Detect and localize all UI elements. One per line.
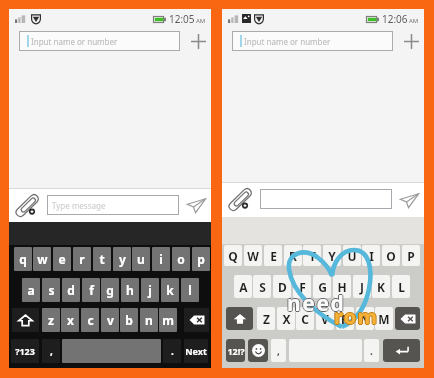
button[interactable]: c [81, 308, 99, 332]
button[interactable]: Backspace [395, 307, 420, 330]
button[interactable]: q [14, 247, 32, 271]
button[interactable]: Z [257, 307, 275, 330]
button[interactable]: B [336, 307, 354, 330]
button[interactable]: u [132, 247, 150, 271]
button[interactable]: Type message [47, 195, 179, 215]
button[interactable]: . [163, 339, 181, 363]
button[interactable]: W [244, 245, 262, 266]
staticText: w [37, 251, 48, 267]
button[interactable]: r [73, 247, 91, 271]
button[interactable]: 12!? [226, 339, 245, 362]
button[interactable]: s [42, 278, 60, 302]
button[interactable]: Emoji [248, 339, 268, 362]
staticText: AM [409, 17, 419, 25]
button[interactable]: V [316, 307, 334, 330]
button[interactable]: k [161, 278, 179, 302]
button[interactable]: l [181, 278, 199, 302]
button[interactable]: , [271, 339, 286, 362]
button[interactable]: Next [184, 339, 208, 363]
staticText: f [89, 282, 94, 298]
button[interactable]: p [192, 247, 210, 271]
button[interactable]: v [101, 308, 119, 332]
button[interactable]: i [152, 247, 170, 271]
button[interactable]: Input name or number [232, 31, 393, 51]
button[interactable]: E [264, 245, 282, 266]
button[interactable]: Shift [12, 308, 39, 332]
button[interactable]: j [141, 278, 159, 302]
staticText: r [79, 251, 85, 267]
button[interactable]: K [372, 275, 390, 298]
staticText: R [289, 248, 297, 264]
button[interactable]: F [293, 275, 311, 298]
button[interactable]: O [382, 245, 400, 266]
button[interactable]: Attach file [15, 189, 41, 222]
button[interactable]: N [356, 307, 374, 330]
button[interactable]: G [313, 275, 331, 298]
button[interactable]: g [101, 278, 119, 302]
staticText: 12:06 [382, 12, 408, 26]
button[interactable]: z [42, 308, 60, 332]
staticText: h [126, 282, 134, 298]
button[interactable] [260, 189, 392, 209]
staticText: L [398, 279, 405, 295]
button[interactable]: A [234, 275, 252, 298]
button[interactable]: . [364, 339, 379, 362]
button[interactable]: Y [323, 245, 341, 266]
button[interactable]: Attach file [228, 183, 254, 217]
button[interactable]: o [172, 247, 190, 271]
button[interactable]: m [159, 308, 177, 332]
staticText: E [270, 248, 277, 264]
staticText: N [360, 311, 370, 327]
button[interactable]: Add contact [398, 31, 424, 51]
staticText: l [188, 282, 192, 298]
button[interactable]: e [53, 247, 71, 271]
staticText: a [27, 282, 35, 298]
button[interactable]: b [120, 308, 138, 332]
button[interactable]: d [62, 278, 80, 302]
button[interactable]: C [296, 307, 314, 330]
button[interactable]: X [277, 307, 295, 330]
staticText: t [99, 251, 105, 267]
staticText: need [287, 288, 346, 317]
button[interactable]: M [375, 307, 393, 330]
button[interactable]: D [273, 275, 291, 298]
button[interactable]: Add contact [185, 31, 211, 51]
button[interactable]: h [121, 278, 139, 302]
button[interactable]: ?123 [11, 339, 39, 363]
button[interactable]: R [284, 245, 302, 266]
button[interactable]: Send [394, 183, 424, 217]
button[interactable]: a [22, 278, 40, 302]
button[interactable]: J [353, 275, 371, 298]
button[interactable]: Send [181, 189, 211, 222]
button[interactable]: Enter [383, 339, 420, 362]
staticText: rom [334, 302, 379, 329]
staticText: A [239, 279, 248, 295]
button[interactable]: Shift [226, 307, 253, 330]
staticText: m [162, 312, 174, 328]
button[interactable]: P [402, 245, 420, 266]
staticText: j [148, 282, 152, 298]
button[interactable]: L [392, 275, 410, 298]
button[interactable]: f [82, 278, 100, 302]
button[interactable]: U [343, 245, 361, 266]
button[interactable]: n [140, 308, 158, 332]
staticText: , [50, 344, 53, 358]
button[interactable]: Input name or number [19, 31, 180, 51]
staticText: V [321, 311, 329, 327]
button[interactable]: x [61, 308, 79, 332]
button[interactable]: t [93, 247, 111, 271]
button[interactable]: H [333, 275, 351, 298]
button[interactable]: Q [224, 245, 242, 266]
button[interactable]: Backspace [184, 308, 209, 332]
button[interactable]: y [113, 247, 131, 271]
staticText: U [347, 248, 357, 264]
button[interactable]: , [42, 339, 60, 363]
button[interactable]: S [253, 275, 271, 298]
staticText: rom [334, 303, 379, 330]
staticText: P [407, 248, 415, 264]
button[interactable]: w [33, 247, 51, 271]
button[interactable]: I [362, 245, 380, 266]
button[interactable]: T [303, 245, 321, 266]
